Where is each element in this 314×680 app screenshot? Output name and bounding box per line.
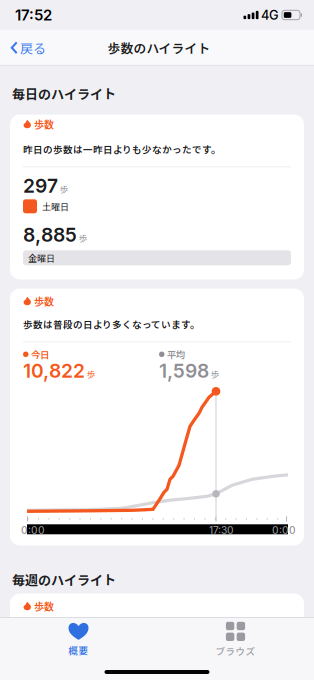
- staticText: 歩: [86, 368, 95, 380]
- button[interactable]: 戻る: [0, 30, 46, 65]
- staticText: 平均: [167, 347, 185, 361]
- staticText: 概要: [68, 643, 88, 657]
- staticText: 0:00: [21, 524, 45, 537]
- button[interactable]: 概要: [0, 618, 157, 657]
- staticText: 0:00: [272, 524, 296, 537]
- staticText: 17:30: [209, 524, 234, 537]
- staticText: 金曜日: [28, 251, 55, 264]
- staticText: 土曜日: [42, 200, 69, 213]
- staticText: 歩: [78, 232, 87, 244]
- staticText: 歩数: [34, 117, 54, 131]
- staticText: 10,822: [23, 359, 85, 382]
- button[interactable]: ブラウズ: [157, 617, 314, 658]
- staticText: 毎週のハイライト: [12, 570, 116, 589]
- staticText: 今日: [31, 347, 49, 361]
- staticText: 昨日の歩数は一昨日よりも少なかったです。: [23, 142, 221, 156]
- staticText: 297: [23, 174, 58, 197]
- staticText: 戻る: [20, 38, 46, 57]
- staticText: 歩数: [34, 294, 54, 308]
- staticText: 歩: [59, 183, 68, 195]
- staticText: 毎日のハイライト: [12, 84, 116, 103]
- staticText: 17:52: [15, 6, 52, 24]
- staticText: 歩数: [34, 599, 54, 613]
- staticText: 歩数は普段の日より多くなっています。: [23, 317, 200, 331]
- staticText: 8,885: [23, 223, 77, 246]
- staticText: 4G: [261, 7, 279, 23]
- staticText: 歩: [210, 368, 219, 380]
- staticText: 1,598: [159, 359, 209, 382]
- staticText: 歩数のハイライト: [107, 39, 210, 57]
- staticText: ブラウズ: [215, 644, 255, 658]
